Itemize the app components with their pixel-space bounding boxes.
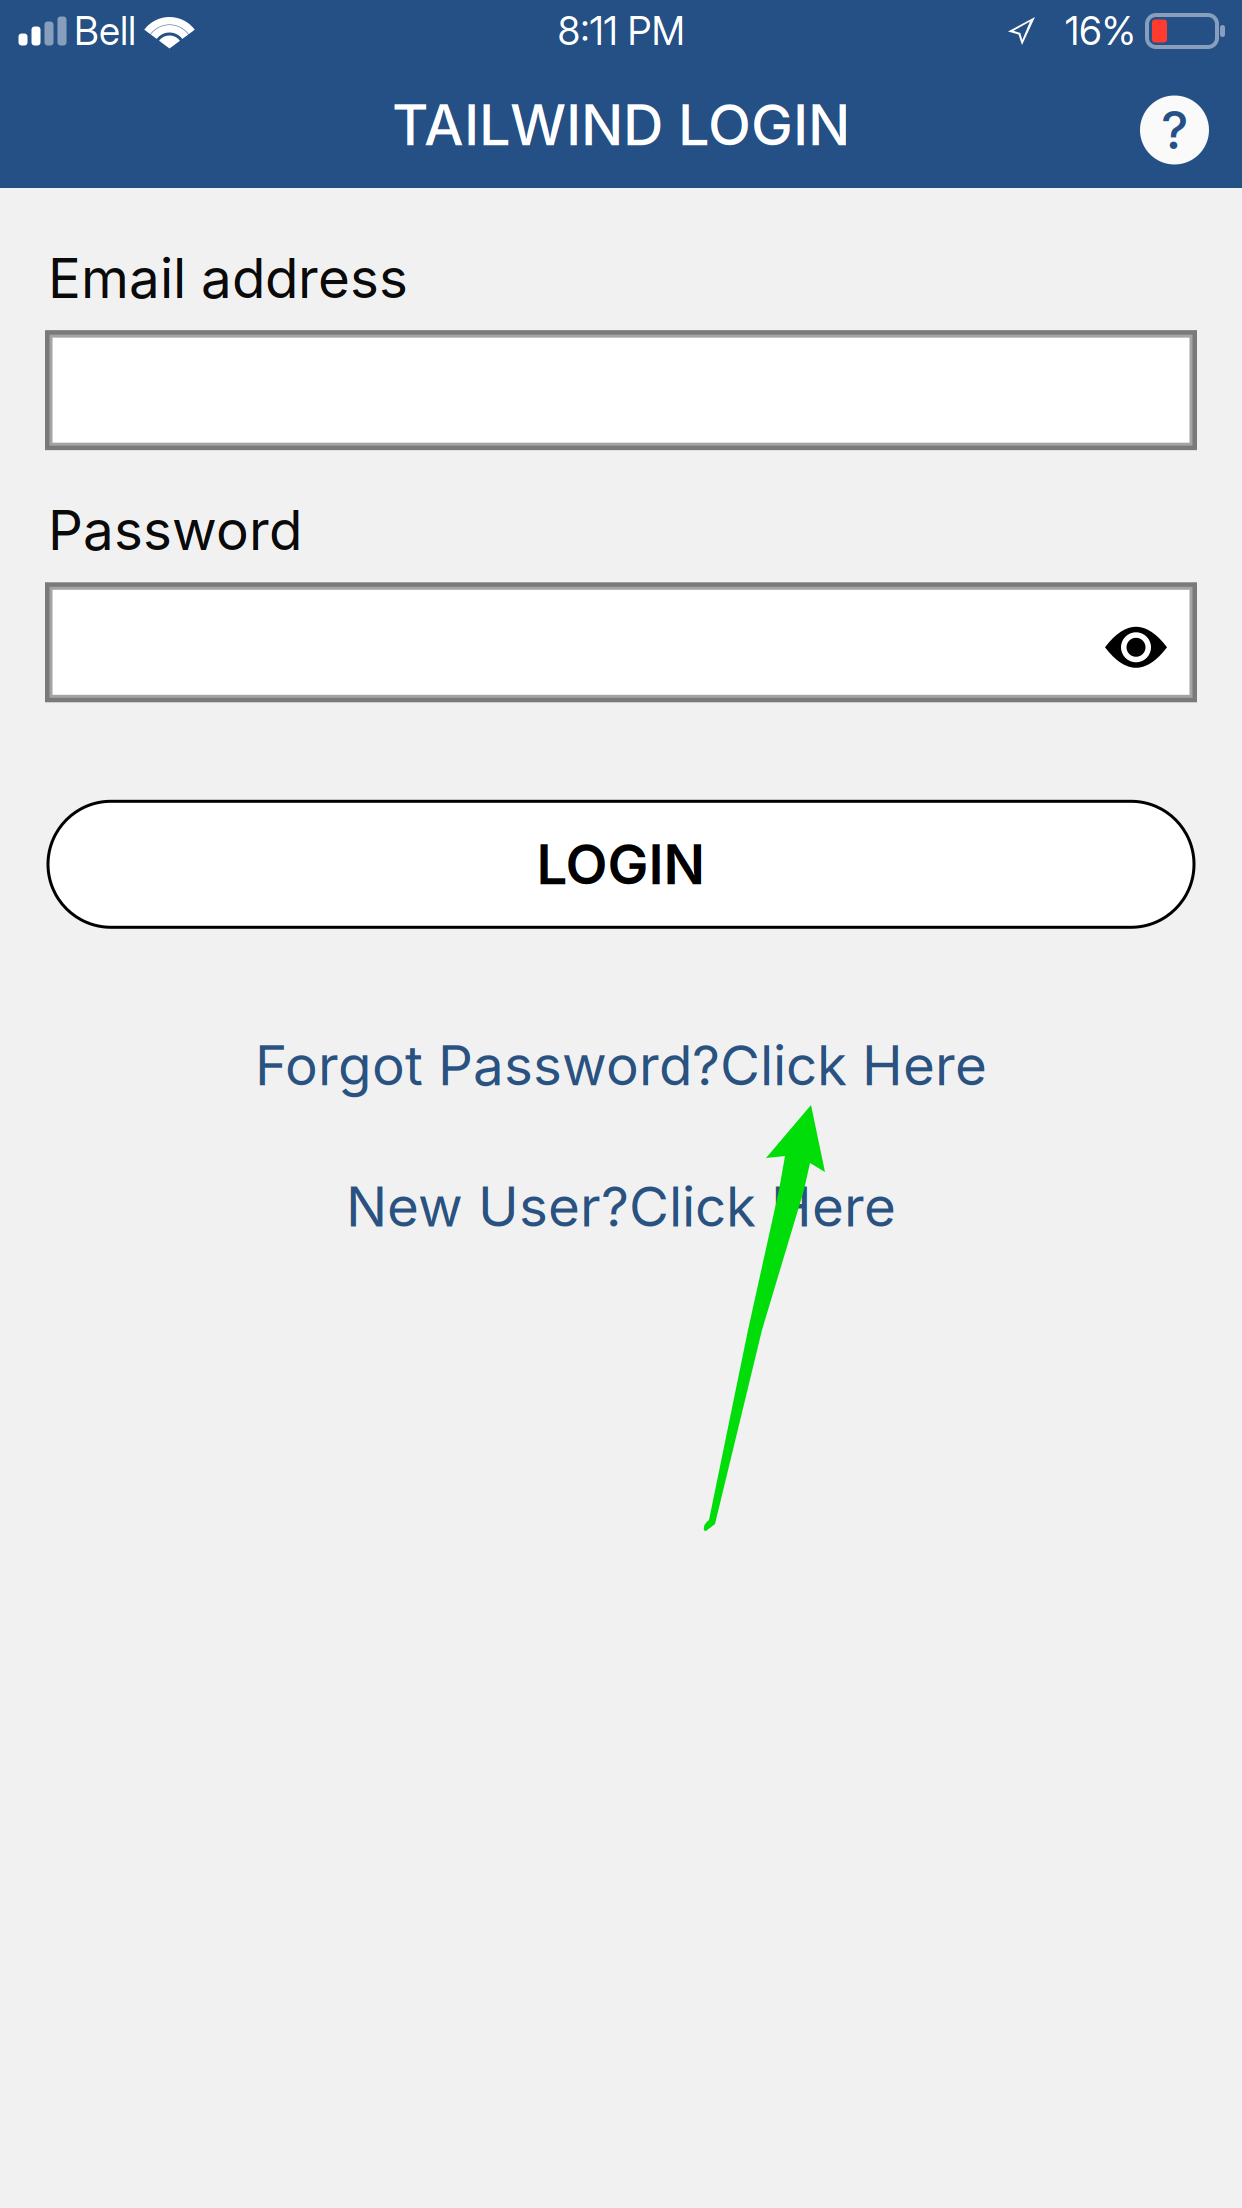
staticText: ? [1161, 98, 1188, 161]
staticText: TAILWIND LOGIN [392, 91, 850, 159]
button[interactable]: Show password [1105, 620, 1167, 664]
staticText: Email address [48, 245, 408, 311]
staticText: Password [48, 497, 302, 563]
button[interactable]: Help [1140, 90, 1209, 159]
button[interactable]: Forgot Password?Click Here [48, 1032, 1194, 1098]
staticText: 16% [1065, 8, 1136, 54]
staticText: Forgot Password?Click Here [255, 1032, 987, 1098]
staticText: 8:11 PM [557, 8, 684, 54]
staticText: LOGIN [536, 831, 705, 897]
button[interactable]: LOGIN [48, 801, 1194, 927]
staticText: New User?Click Here [346, 1173, 896, 1239]
staticText: Bell [74, 8, 136, 54]
button[interactable]: New User?Click Here [48, 1173, 1194, 1239]
